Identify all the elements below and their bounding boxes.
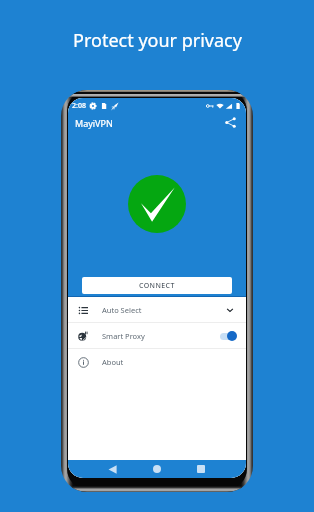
staticText: Protect your privacy [73, 28, 242, 53]
other: Expand [223, 303, 237, 317]
button[interactable]: Smart Proxy toggle [216, 330, 237, 342]
button[interactable]: Home [149, 461, 165, 477]
staticText: Auto Select [102, 305, 142, 315]
button[interactable]: Back [104, 461, 120, 477]
button[interactable]: Recent apps [193, 461, 209, 477]
button[interactable]: Share [220, 112, 240, 132]
staticText: About [102, 357, 124, 367]
button[interactable]: Auto Select [68, 297, 246, 322]
button[interactable]: About [68, 349, 246, 374]
button[interactable]: Smart Proxy [68, 323, 246, 348]
staticText: Smart Proxy [102, 331, 145, 341]
button[interactable]: CONNECT [82, 277, 232, 294]
staticText: CONNECT [139, 281, 175, 291]
staticText: MayiVPN [75, 117, 113, 129]
staticText: 2:08 [72, 101, 86, 111]
